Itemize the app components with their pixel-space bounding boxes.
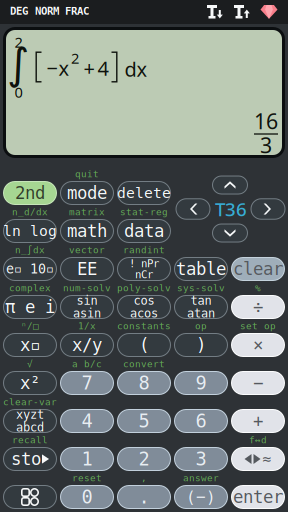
staticText: 0 bbox=[14, 82, 22, 102]
button[interactable]: x/y bbox=[60, 333, 114, 357]
button[interactable]: 4 bbox=[60, 409, 114, 433]
button[interactable]: 2 bbox=[117, 447, 171, 471]
button[interactable]: x² bbox=[3, 371, 57, 395]
staticText: nCr bbox=[135, 268, 153, 281]
staticText: 1/x bbox=[78, 321, 96, 331]
button[interactable]: enter bbox=[231, 485, 285, 509]
button[interactable]: 9 bbox=[174, 371, 228, 395]
staticText: , bbox=[141, 473, 147, 483]
staticText: 16 bbox=[254, 107, 278, 135]
button[interactable]: Increase text size bbox=[229, 1, 255, 23]
button[interactable]: 3 bbox=[174, 447, 228, 471]
button[interactable]: ! nPr bbox=[117, 257, 171, 281]
staticText: e▫ 10▫ bbox=[6, 261, 54, 276]
staticText: delete bbox=[117, 185, 171, 201]
button[interactable]: clear bbox=[231, 257, 285, 281]
button[interactable]: EE bbox=[60, 257, 114, 281]
button[interactable]: math bbox=[60, 219, 114, 243]
staticText: answer bbox=[183, 473, 219, 483]
staticText: math bbox=[67, 221, 107, 241]
staticText: dx bbox=[124, 56, 147, 82]
staticText: f↔d bbox=[249, 435, 267, 445]
staticText: 4 bbox=[81, 410, 92, 432]
staticText: acos bbox=[130, 306, 158, 320]
button[interactable]: sin bbox=[60, 295, 114, 319]
button[interactable]: Store bbox=[3, 447, 57, 471]
staticText: EE bbox=[77, 259, 97, 279]
staticText: poly-solv bbox=[117, 283, 171, 293]
staticText: clear-var bbox=[3, 397, 57, 407]
staticText: ln log bbox=[3, 223, 57, 239]
staticText: √ bbox=[27, 359, 33, 369]
staticText: ( bbox=[139, 335, 149, 355]
button[interactable]: + bbox=[231, 409, 285, 433]
staticText: − bbox=[46, 55, 57, 81]
button[interactable]: delete bbox=[117, 181, 171, 205]
button[interactable]: data bbox=[117, 219, 171, 243]
staticText: 8 bbox=[138, 372, 149, 394]
staticText: + bbox=[253, 411, 263, 431]
button[interactable]: Down bbox=[212, 223, 248, 242]
staticText: set op bbox=[240, 321, 276, 331]
staticText: 3 bbox=[260, 131, 272, 159]
staticText: xyzt bbox=[16, 408, 44, 421]
button[interactable]: tan bbox=[174, 295, 228, 319]
staticText: op bbox=[195, 321, 207, 331]
button[interactable]: (−) bbox=[174, 485, 228, 509]
staticText: 4 bbox=[97, 55, 108, 81]
button[interactable]: − bbox=[231, 371, 285, 395]
staticText: vector bbox=[69, 245, 105, 255]
staticText: a b/c bbox=[72, 359, 102, 369]
staticText: 9 bbox=[195, 372, 206, 394]
button[interactable]: 1 bbox=[60, 447, 114, 471]
staticText: ∫ bbox=[7, 40, 29, 88]
staticText: 2 bbox=[14, 32, 22, 52]
button[interactable]: Up bbox=[212, 175, 248, 194]
staticText: (−) bbox=[186, 488, 216, 506]
button[interactable]: Decrease text size bbox=[202, 1, 228, 23]
button[interactable]: ln log bbox=[3, 219, 57, 243]
button[interactable]: × bbox=[231, 333, 285, 357]
button[interactable]: . bbox=[117, 485, 171, 509]
button[interactable]: 7 bbox=[60, 371, 114, 395]
staticText: table bbox=[176, 259, 226, 279]
button[interactable]: x▫ bbox=[3, 333, 57, 357]
button[interactable]: ) bbox=[174, 333, 228, 357]
button[interactable]: Toggle exact approximate bbox=[231, 447, 285, 471]
button[interactable]: table bbox=[174, 257, 228, 281]
staticText: asin bbox=[73, 306, 101, 320]
staticText: ! nPr bbox=[129, 257, 159, 269]
button[interactable]: 2nd bbox=[3, 181, 57, 205]
button[interactable]: Upgrade to Pro bbox=[257, 1, 281, 23]
staticText: enter bbox=[233, 487, 283, 507]
button[interactable]: Apps bbox=[3, 485, 57, 509]
button[interactable]: 5 bbox=[117, 409, 171, 433]
button[interactable]: mode bbox=[60, 181, 114, 205]
button[interactable]: 0 bbox=[60, 485, 114, 509]
button[interactable]: π e i bbox=[3, 295, 57, 319]
staticText: % bbox=[255, 283, 261, 293]
staticText: ÷ bbox=[253, 297, 263, 317]
button[interactable]: Right bbox=[250, 198, 285, 220]
staticText: 1 bbox=[81, 448, 92, 470]
button[interactable]: e▫ 10▫ bbox=[3, 257, 57, 281]
staticText: 2 bbox=[138, 448, 149, 470]
staticText: 5 bbox=[138, 410, 149, 432]
staticText: ≈ bbox=[262, 451, 271, 467]
staticText: ⁿ/□ bbox=[21, 321, 39, 331]
staticText: FRAC bbox=[65, 5, 89, 17]
staticText: ) bbox=[196, 335, 206, 355]
button[interactable]: cos bbox=[117, 295, 171, 319]
button[interactable]: ( bbox=[117, 333, 171, 357]
staticText: mode bbox=[67, 183, 107, 203]
button[interactable]: 8 bbox=[117, 371, 171, 395]
button[interactable]: 6 bbox=[174, 409, 228, 433]
button[interactable]: xyzt bbox=[3, 409, 57, 433]
button[interactable]: Left bbox=[175, 198, 210, 220]
button[interactable]: ÷ bbox=[231, 295, 285, 319]
staticText: matrix bbox=[69, 207, 105, 217]
staticText: x▫ bbox=[20, 335, 40, 355]
staticText: constants bbox=[117, 321, 171, 331]
staticText: + bbox=[83, 55, 94, 81]
staticText: DEG bbox=[10, 5, 28, 17]
